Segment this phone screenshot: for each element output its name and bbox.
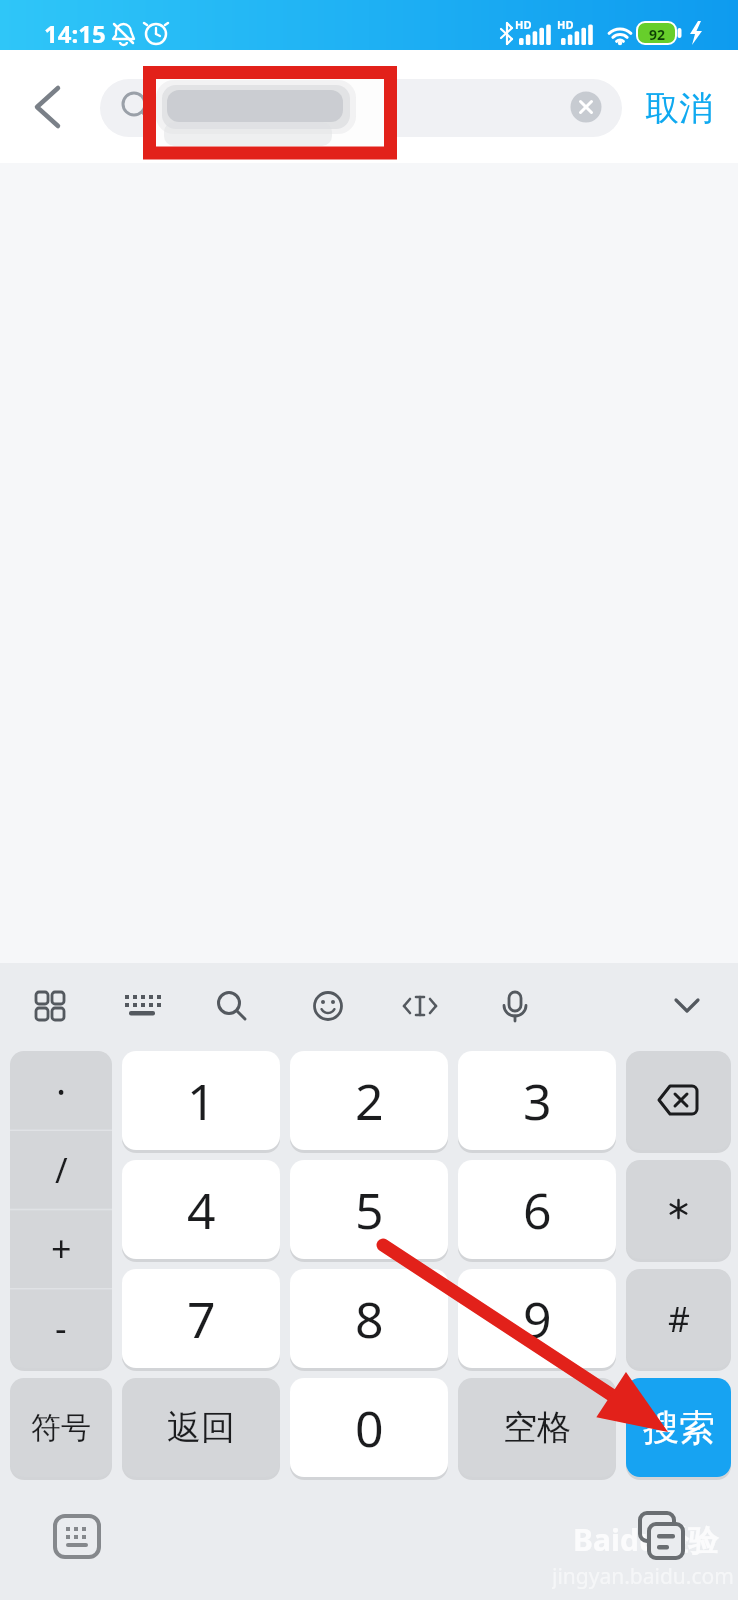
staticText: 0 (355, 1394, 384, 1462)
staticText: 14:15 (44, 17, 106, 49)
staticText: 取消 (645, 87, 713, 130)
staticText: 3 (523, 1067, 552, 1135)
button[interactable]: 4 (122, 1160, 280, 1259)
staticText: · (56, 1065, 67, 1117)
button[interactable] (626, 1051, 731, 1150)
button[interactable] (100, 79, 622, 137)
staticText: 空格 (503, 1406, 571, 1449)
staticText: 5 (355, 1176, 384, 1244)
staticText: 1 (187, 1067, 216, 1135)
button[interactable] (112, 978, 168, 1034)
staticText: 7 (187, 1285, 216, 1353)
button[interactable]: + (10, 1209, 112, 1288)
button[interactable] (626, 1160, 731, 1259)
button[interactable] (632, 1505, 692, 1567)
button[interactable]: · (10, 1051, 112, 1130)
button[interactable] (20, 80, 76, 136)
staticText: 9 (523, 1285, 552, 1353)
button[interactable]: 3 (458, 1051, 616, 1150)
button[interactable] (204, 978, 260, 1034)
button[interactable]: 6 (458, 1160, 616, 1259)
staticText: jingyan.baidu.com (552, 1562, 734, 1590)
staticText: HD (557, 17, 574, 32)
staticText: 符号 (31, 1409, 91, 1447)
button[interactable]: 9 (458, 1269, 616, 1368)
button[interactable] (568, 89, 604, 125)
button[interactable]: 取消 (636, 85, 722, 131)
staticText: 2 (355, 1067, 384, 1135)
staticText: 8 (355, 1285, 384, 1353)
button[interactable] (487, 978, 543, 1034)
button[interactable] (45, 1506, 109, 1568)
button[interactable] (22, 978, 78, 1034)
button[interactable]: 2 (290, 1051, 448, 1150)
button[interactable]: 0 (290, 1378, 448, 1477)
button[interactable] (300, 978, 356, 1034)
staticText: HD (515, 17, 532, 32)
button[interactable]: 1 (122, 1051, 280, 1150)
staticText: 4 (187, 1176, 216, 1244)
staticText: + (51, 1224, 72, 1273)
button[interactable]: / (10, 1130, 112, 1209)
staticText: 返回 (167, 1406, 235, 1449)
button[interactable]: 返回 (122, 1378, 280, 1477)
button[interactable]: 空格 (458, 1378, 616, 1477)
staticText: / (55, 1147, 68, 1193)
staticText: # (668, 1296, 690, 1342)
staticText: 92 (649, 25, 666, 44)
button[interactable]: - (10, 1288, 112, 1367)
button[interactable]: 搜索 (626, 1378, 731, 1477)
staticText: - (55, 1303, 67, 1352)
staticText: Baidu经验 (573, 1519, 719, 1560)
button[interactable]: 5 (290, 1160, 448, 1259)
staticText: 搜索 (643, 1405, 715, 1450)
button[interactable] (659, 978, 715, 1034)
button[interactable]: 8 (290, 1269, 448, 1368)
button[interactable] (392, 978, 448, 1034)
staticText: 6 (523, 1176, 552, 1244)
button[interactable]: # (626, 1269, 731, 1368)
button[interactable]: 符号 (10, 1378, 112, 1477)
button[interactable]: 7 (122, 1269, 280, 1368)
